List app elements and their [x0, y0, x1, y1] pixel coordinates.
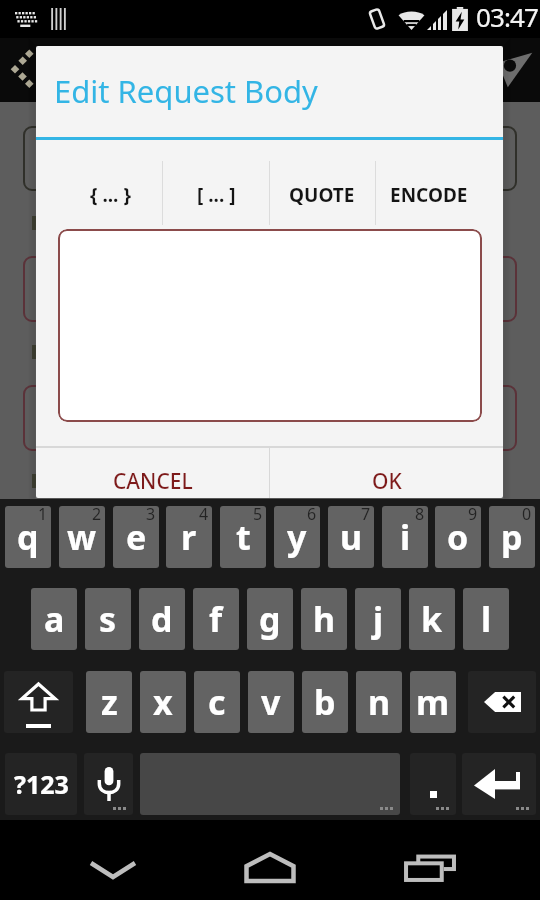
button[interactable]: n — [356, 671, 402, 733]
button[interactable]: [ ... ] — [163, 140, 269, 230]
staticText: [ ... ] — [197, 182, 236, 208]
staticText: ?123 — [14, 767, 69, 801]
staticText: 2 — [92, 506, 102, 525]
button[interactable]: q — [5, 506, 51, 568]
staticText: 03:47 — [476, 0, 538, 34]
button[interactable]: Hide keyboard — [73, 844, 153, 888]
button[interactable]: c — [194, 671, 240, 733]
staticText: 5 — [253, 506, 263, 525]
button[interactable]: j — [355, 588, 401, 650]
staticText: 6 — [307, 506, 317, 525]
staticText: g — [259, 596, 281, 642]
staticText: s — [99, 596, 117, 642]
button[interactable]: p — [489, 506, 535, 568]
button[interactable]: OK — [270, 448, 503, 498]
staticText: u — [340, 514, 363, 560]
staticText: c — [208, 679, 226, 725]
button[interactable]: b — [302, 671, 348, 733]
button[interactable]: Shift — [4, 671, 73, 733]
staticText: w — [67, 514, 97, 560]
staticText: { ... } — [90, 182, 131, 208]
staticText: z — [101, 679, 118, 725]
staticText: t — [236, 514, 251, 560]
button[interactable]: m — [410, 671, 456, 733]
button[interactable]: a — [31, 588, 77, 650]
staticText: CANCEL — [113, 467, 193, 496]
button[interactable]: g — [247, 588, 293, 650]
button[interactable]: ENCODE — [376, 140, 482, 230]
button[interactable]: w — [59, 506, 105, 568]
button[interactable]: d — [139, 588, 185, 650]
button[interactable]: Period — [410, 753, 456, 815]
staticText: l — [481, 596, 492, 642]
staticText: 3 — [146, 506, 156, 525]
button[interactable]: Enter — [462, 753, 536, 815]
button[interactable]: ?123 — [5, 753, 77, 815]
button[interactable]: t — [220, 506, 266, 568]
staticText: Edit Request Body — [54, 70, 318, 112]
staticText: i — [400, 514, 411, 560]
button[interactable]: k — [409, 588, 455, 650]
button[interactable]: e — [113, 506, 159, 568]
button[interactable]: CANCEL — [36, 448, 269, 498]
staticText: e — [126, 514, 147, 560]
staticText: d — [151, 596, 173, 642]
staticText: a — [44, 596, 65, 642]
staticText: y — [287, 514, 307, 560]
button[interactable]: s — [85, 588, 131, 650]
button[interactable]: h — [301, 588, 347, 650]
button[interactable] — [58, 229, 482, 422]
staticText: b — [314, 679, 336, 725]
button[interactable]: u — [328, 506, 374, 568]
staticText: x — [153, 679, 173, 725]
button[interactable]: Home — [230, 843, 310, 887]
staticText: OK — [372, 467, 402, 496]
staticText: p — [501, 514, 523, 560]
staticText: o — [447, 514, 469, 560]
button[interactable]: l — [463, 588, 509, 650]
staticText: n — [368, 679, 391, 725]
button[interactable]: z — [86, 671, 132, 733]
button[interactable]: f — [193, 588, 239, 650]
staticText: m — [416, 679, 450, 725]
staticText: 0 — [522, 506, 532, 525]
button[interactable]: y — [274, 506, 320, 568]
staticText: f — [209, 596, 223, 642]
button[interactable]: v — [248, 671, 294, 733]
button[interactable]: Backspace — [468, 671, 536, 733]
button[interactable]: r — [166, 506, 212, 568]
staticText: q — [17, 514, 39, 560]
staticText: 9 — [468, 506, 478, 525]
button[interactable]: Voice input — [84, 753, 133, 815]
staticText: 7 — [361, 506, 371, 525]
staticText: ENCODE — [390, 182, 468, 208]
staticText: v — [261, 679, 281, 725]
button[interactable]: i — [382, 506, 428, 568]
staticText: QUOTE — [289, 182, 355, 208]
staticText: 1 — [38, 506, 48, 525]
button[interactable]: Recent apps — [389, 843, 469, 887]
staticText: 4 — [199, 506, 209, 525]
button[interactable]: { ... } — [57, 140, 163, 230]
button[interactable]: o — [435, 506, 481, 568]
staticText: k — [421, 596, 443, 642]
staticText: r — [181, 514, 197, 560]
staticText: j — [373, 596, 384, 642]
staticText: 8 — [415, 506, 425, 525]
button[interactable]: x — [140, 671, 186, 733]
button[interactable]: QUOTE — [269, 140, 375, 230]
staticText: h — [313, 596, 336, 642]
